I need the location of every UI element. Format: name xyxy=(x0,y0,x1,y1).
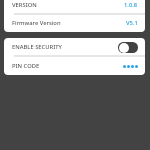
button[interactable]: PIN CODE xyxy=(4,57,145,75)
button[interactable]: PIN code xyxy=(123,65,138,68)
button[interactable]: VERSION xyxy=(4,0,145,13)
button[interactable]: ENABLE SECURITY xyxy=(4,38,145,55)
staticText: VERSION xyxy=(12,1,37,9)
staticText: V5.1 xyxy=(126,19,138,27)
button[interactable]: Firmware Version xyxy=(4,15,145,32)
button[interactable]: Enable security toggle, off xyxy=(118,42,138,53)
staticText: PIN CODE xyxy=(12,62,40,70)
staticText: 1.0.8 xyxy=(124,1,138,9)
staticText: ENABLE SECURITY xyxy=(12,43,62,51)
staticText: Firmware Version xyxy=(12,19,61,27)
